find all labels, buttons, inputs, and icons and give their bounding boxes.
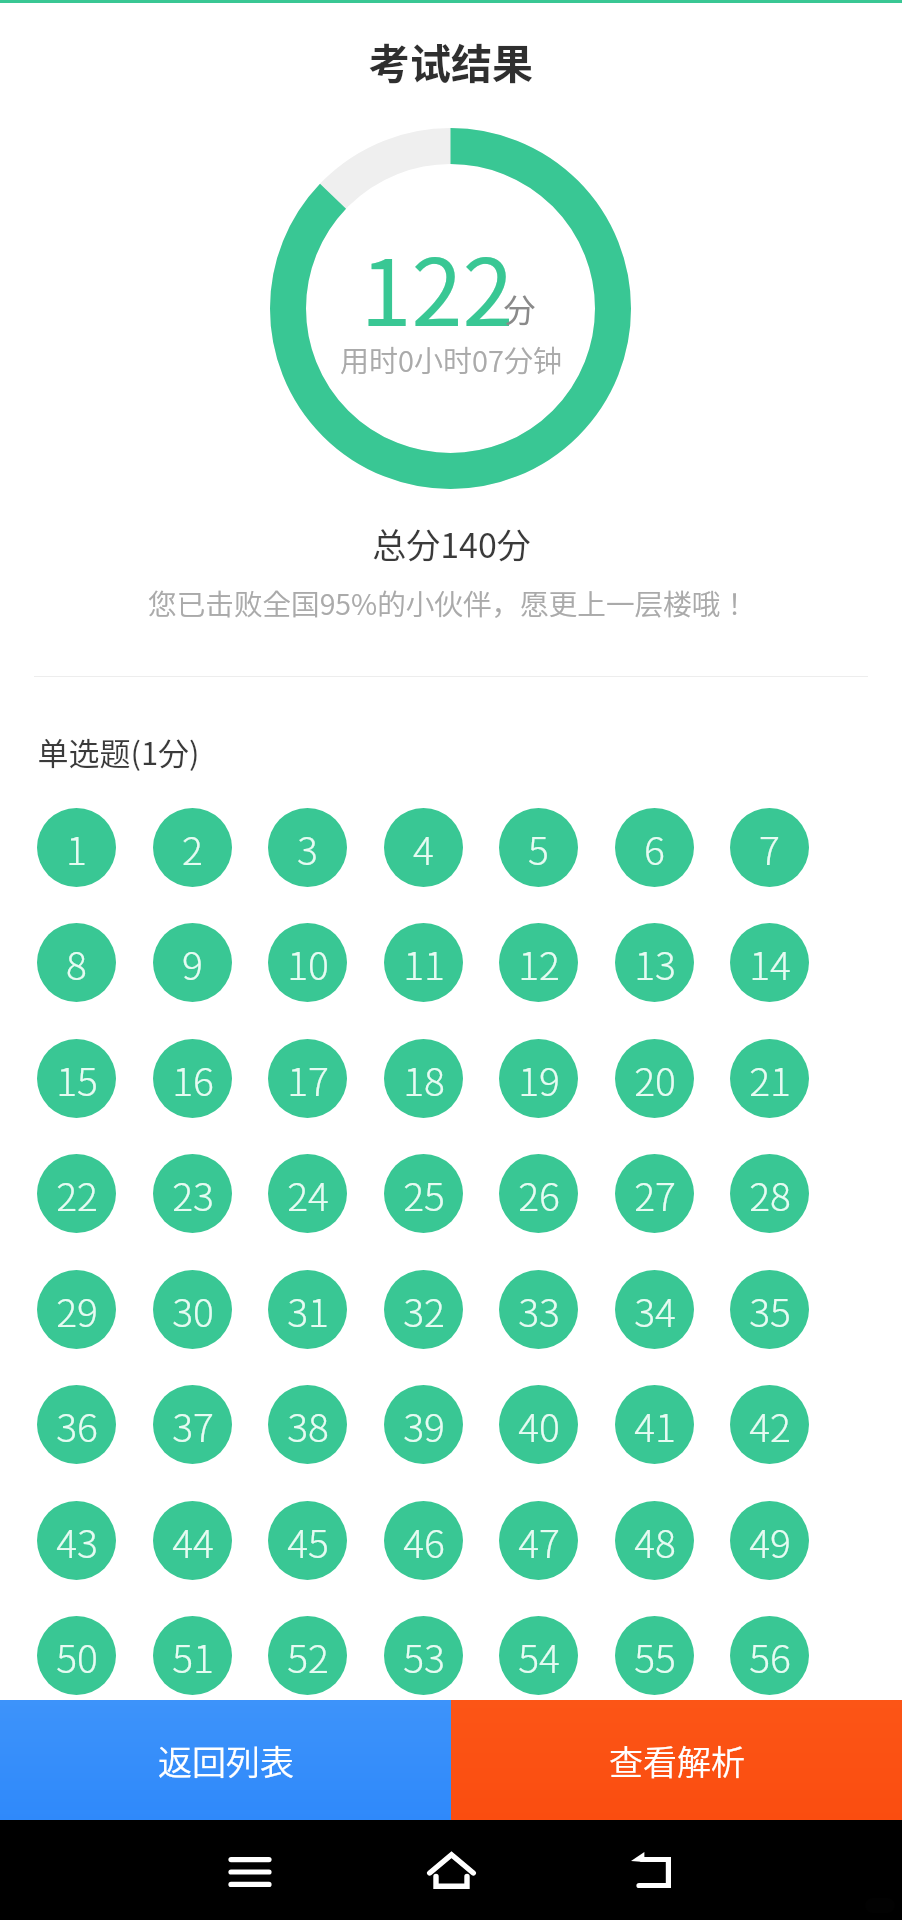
- button[interactable]: 25: [384, 1154, 463, 1233]
- button[interactable]: 2: [153, 808, 232, 887]
- button[interactable]: 47: [499, 1501, 578, 1580]
- staticText: 51: [172, 1628, 214, 1684]
- button[interactable]: 46: [384, 1501, 463, 1580]
- staticText: 考试结果: [369, 31, 533, 90]
- staticText: 8: [66, 935, 87, 991]
- staticText: 47: [518, 1513, 560, 1569]
- button[interactable]: 4: [384, 808, 463, 887]
- staticText: 53: [403, 1628, 445, 1684]
- staticText: 38: [287, 1397, 329, 1453]
- button[interactable]: 3: [268, 808, 347, 887]
- button[interactable]: 54: [499, 1616, 578, 1695]
- staticText: 23: [172, 1166, 214, 1222]
- button[interactable]: 查看解析: [451, 1700, 902, 1820]
- staticText: 26: [518, 1166, 560, 1222]
- button[interactable]: 48: [615, 1501, 694, 1580]
- button[interactable]: 26: [499, 1154, 578, 1233]
- staticText: 20: [634, 1051, 676, 1107]
- button[interactable]: Back: [615, 1834, 687, 1906]
- staticText: 122: [360, 219, 514, 352]
- button[interactable]: 8: [37, 923, 116, 1002]
- button[interactable]: 50: [37, 1616, 116, 1695]
- staticText: 1: [66, 820, 87, 876]
- staticText: 27: [634, 1166, 676, 1222]
- staticText: 11: [403, 935, 445, 991]
- button[interactable]: Recent apps: [214, 1836, 286, 1908]
- button[interactable]: 31: [268, 1270, 347, 1349]
- button[interactable]: 9: [153, 923, 232, 1002]
- staticText: 36: [56, 1397, 98, 1453]
- button[interactable]: 42: [730, 1385, 809, 1464]
- staticText: 44: [172, 1513, 214, 1569]
- button[interactable]: 24: [268, 1154, 347, 1233]
- staticText: 17: [287, 1051, 329, 1107]
- button[interactable]: 11: [384, 923, 463, 1002]
- button[interactable]: 6: [615, 808, 694, 887]
- staticText: 返回列表: [158, 1736, 294, 1785]
- button[interactable]: 13: [615, 923, 694, 1002]
- button[interactable]: 40: [499, 1385, 578, 1464]
- button[interactable]: 27: [615, 1154, 694, 1233]
- button[interactable]: 35: [730, 1270, 809, 1349]
- staticText: 19: [518, 1051, 560, 1107]
- button[interactable]: 32: [384, 1270, 463, 1349]
- staticText: 7: [759, 820, 780, 876]
- staticText: 查看解析: [609, 1736, 745, 1785]
- button[interactable]: 19: [499, 1039, 578, 1118]
- staticText: 22: [56, 1166, 98, 1222]
- button[interactable]: 29: [37, 1270, 116, 1349]
- staticText: 14: [749, 935, 791, 991]
- button[interactable]: 52: [268, 1616, 347, 1695]
- button[interactable]: 21: [730, 1039, 809, 1118]
- button[interactable]: 22: [37, 1154, 116, 1233]
- button[interactable]: 37: [153, 1385, 232, 1464]
- staticText: 5: [528, 820, 549, 876]
- button[interactable]: 33: [499, 1270, 578, 1349]
- staticText: 30: [172, 1282, 214, 1338]
- button[interactable]: 53: [384, 1616, 463, 1695]
- button[interactable]: Home: [415, 1834, 487, 1906]
- button[interactable]: 45: [268, 1501, 347, 1580]
- staticText: 37: [172, 1397, 214, 1453]
- button[interactable]: 30: [153, 1270, 232, 1349]
- button[interactable]: 7: [730, 808, 809, 887]
- staticText: 49: [749, 1513, 791, 1569]
- staticText: 3: [297, 820, 318, 876]
- button[interactable]: 返回列表: [0, 1700, 451, 1820]
- button[interactable]: 51: [153, 1616, 232, 1695]
- staticText: 35: [749, 1282, 791, 1338]
- button[interactable]: 18: [384, 1039, 463, 1118]
- staticText: 总分140分: [372, 519, 531, 568]
- staticText: 单选题(1分): [37, 729, 200, 774]
- button[interactable]: 20: [615, 1039, 694, 1118]
- staticText: 4: [413, 820, 434, 876]
- staticText: 48: [634, 1513, 676, 1569]
- button[interactable]: 38: [268, 1385, 347, 1464]
- button[interactable]: 10: [268, 923, 347, 1002]
- button[interactable]: 43: [37, 1501, 116, 1580]
- button[interactable]: 49: [730, 1501, 809, 1580]
- button[interactable]: 23: [153, 1154, 232, 1233]
- button[interactable]: 28: [730, 1154, 809, 1233]
- staticText: 55: [634, 1628, 676, 1684]
- staticText: 32: [403, 1282, 445, 1338]
- button[interactable]: 16: [153, 1039, 232, 1118]
- button[interactable]: 55: [615, 1616, 694, 1695]
- button[interactable]: 36: [37, 1385, 116, 1464]
- staticText: 29: [56, 1282, 98, 1338]
- staticText: 12: [518, 935, 560, 991]
- button[interactable]: 1: [37, 808, 116, 887]
- staticText: 45: [287, 1513, 329, 1569]
- button[interactable]: 12: [499, 923, 578, 1002]
- button[interactable]: 15: [37, 1039, 116, 1118]
- button[interactable]: 39: [384, 1385, 463, 1464]
- button[interactable]: 44: [153, 1501, 232, 1580]
- button[interactable]: 56: [730, 1616, 809, 1695]
- button[interactable]: 5: [499, 808, 578, 887]
- staticText: 41: [634, 1397, 676, 1453]
- button[interactable]: 14: [730, 923, 809, 1002]
- button[interactable]: 34: [615, 1270, 694, 1349]
- staticText: 18: [403, 1051, 445, 1107]
- button[interactable]: 17: [268, 1039, 347, 1118]
- button[interactable]: 41: [615, 1385, 694, 1464]
